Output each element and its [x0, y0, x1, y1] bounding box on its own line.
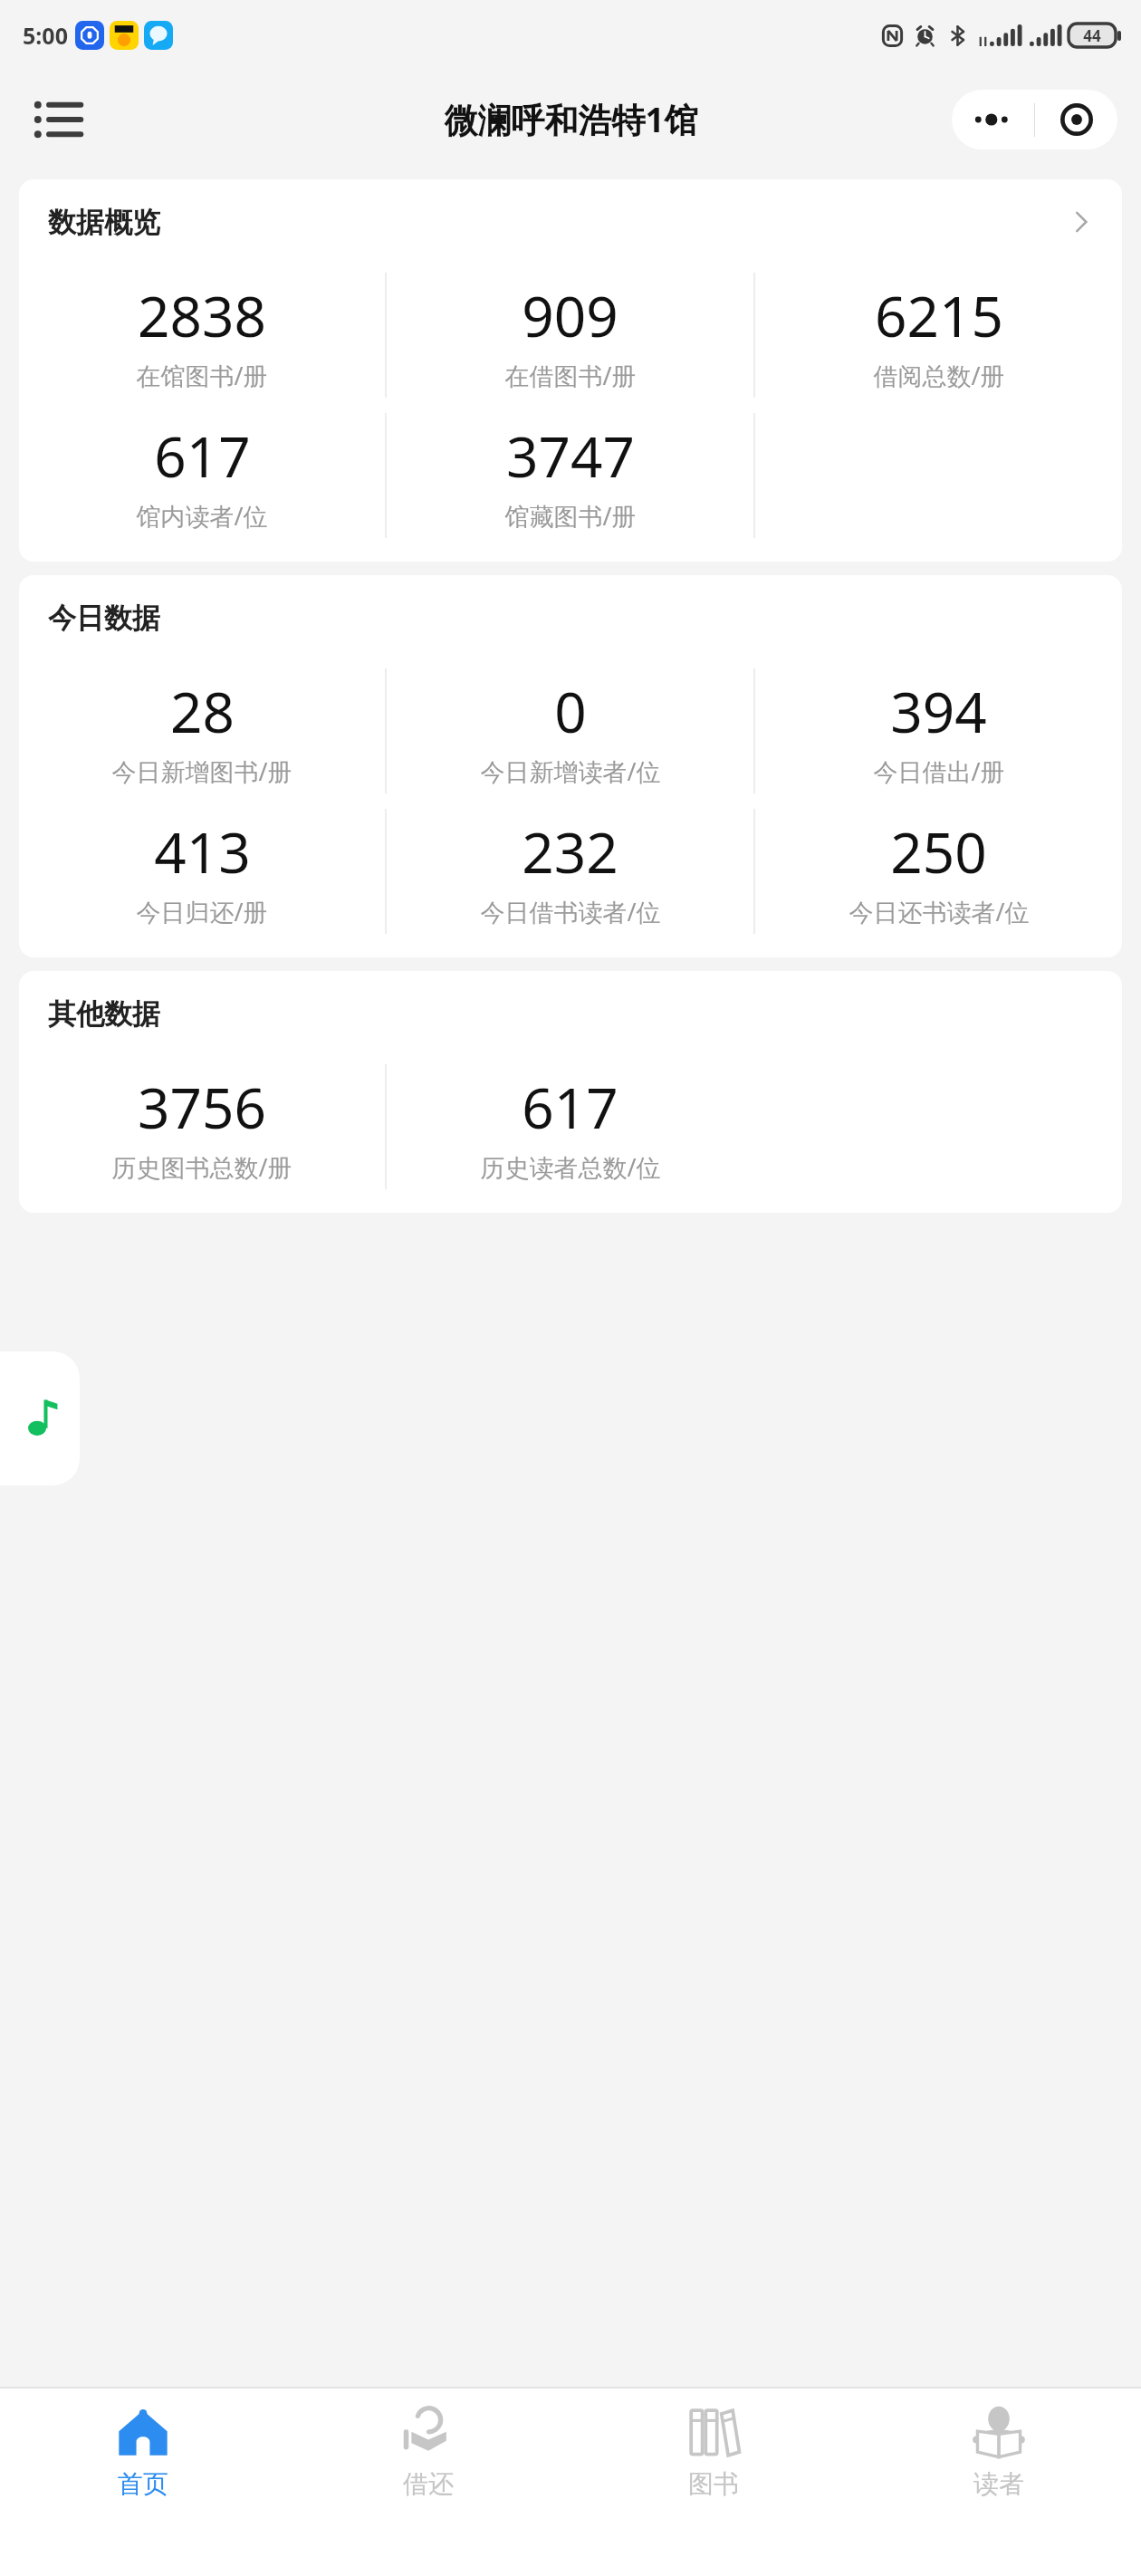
button[interactable]: More: [952, 90, 1034, 149]
staticText: 历史读者总数/位: [480, 1150, 661, 1184]
staticText: 今日还书读者/位: [849, 895, 1030, 928]
staticText: 今日新增读者/位: [480, 755, 661, 788]
staticText: 413: [154, 813, 251, 889]
staticText: 在馆图书/册: [136, 359, 268, 392]
staticText: 250: [890, 813, 987, 889]
staticText: 394: [890, 673, 987, 749]
staticText: 数据概览: [48, 205, 160, 240]
staticText: 今日归还/册: [136, 895, 268, 928]
staticText: 3747: [506, 418, 635, 494]
staticText: 6215: [875, 277, 1003, 353]
staticText: 今日借书读者/位: [480, 895, 661, 928]
staticText: 今日借出/册: [873, 755, 1005, 788]
staticText: 历史图书总数/册: [111, 1150, 292, 1184]
button[interactable]: 数据概览: [19, 179, 1122, 264]
staticText: 617: [522, 1069, 618, 1145]
staticText: 在借图书/册: [504, 359, 637, 392]
staticText: 今日数据: [48, 601, 160, 636]
staticText: 馆藏图书/册: [504, 499, 637, 533]
button[interactable]: Music: [0, 1351, 80, 1485]
button[interactable]: 读者: [856, 2389, 1141, 2576]
staticText: 232: [522, 813, 618, 889]
staticText: 3756: [138, 1069, 266, 1145]
staticText: 馆内读者/位: [136, 499, 268, 533]
button[interactable]: 图书: [570, 2389, 856, 2576]
staticText: 其他数据: [48, 996, 160, 1032]
staticText: 首页: [118, 2468, 168, 2500]
staticText: 今日新增图书/册: [111, 755, 292, 788]
button[interactable]: Menu: [33, 93, 85, 146]
staticText: 909: [522, 277, 618, 353]
staticText: 44: [1083, 25, 1101, 46]
staticText: 2838: [138, 277, 266, 353]
button[interactable]: 借还: [285, 2389, 570, 2576]
staticText: 借还: [403, 2468, 454, 2500]
staticText: 28: [170, 673, 235, 749]
staticText: 微澜呼和浩特1馆: [444, 96, 698, 142]
staticText: 图书: [688, 2468, 739, 2500]
button[interactable]: Close: [1035, 90, 1117, 149]
button[interactable]: 首页: [0, 2389, 285, 2576]
staticText: 读者: [973, 2468, 1024, 2500]
staticText: 5:00: [23, 20, 68, 51]
staticText: 借阅总数/册: [873, 359, 1005, 392]
staticText: 0: [554, 673, 587, 749]
staticText: 617: [154, 418, 251, 494]
